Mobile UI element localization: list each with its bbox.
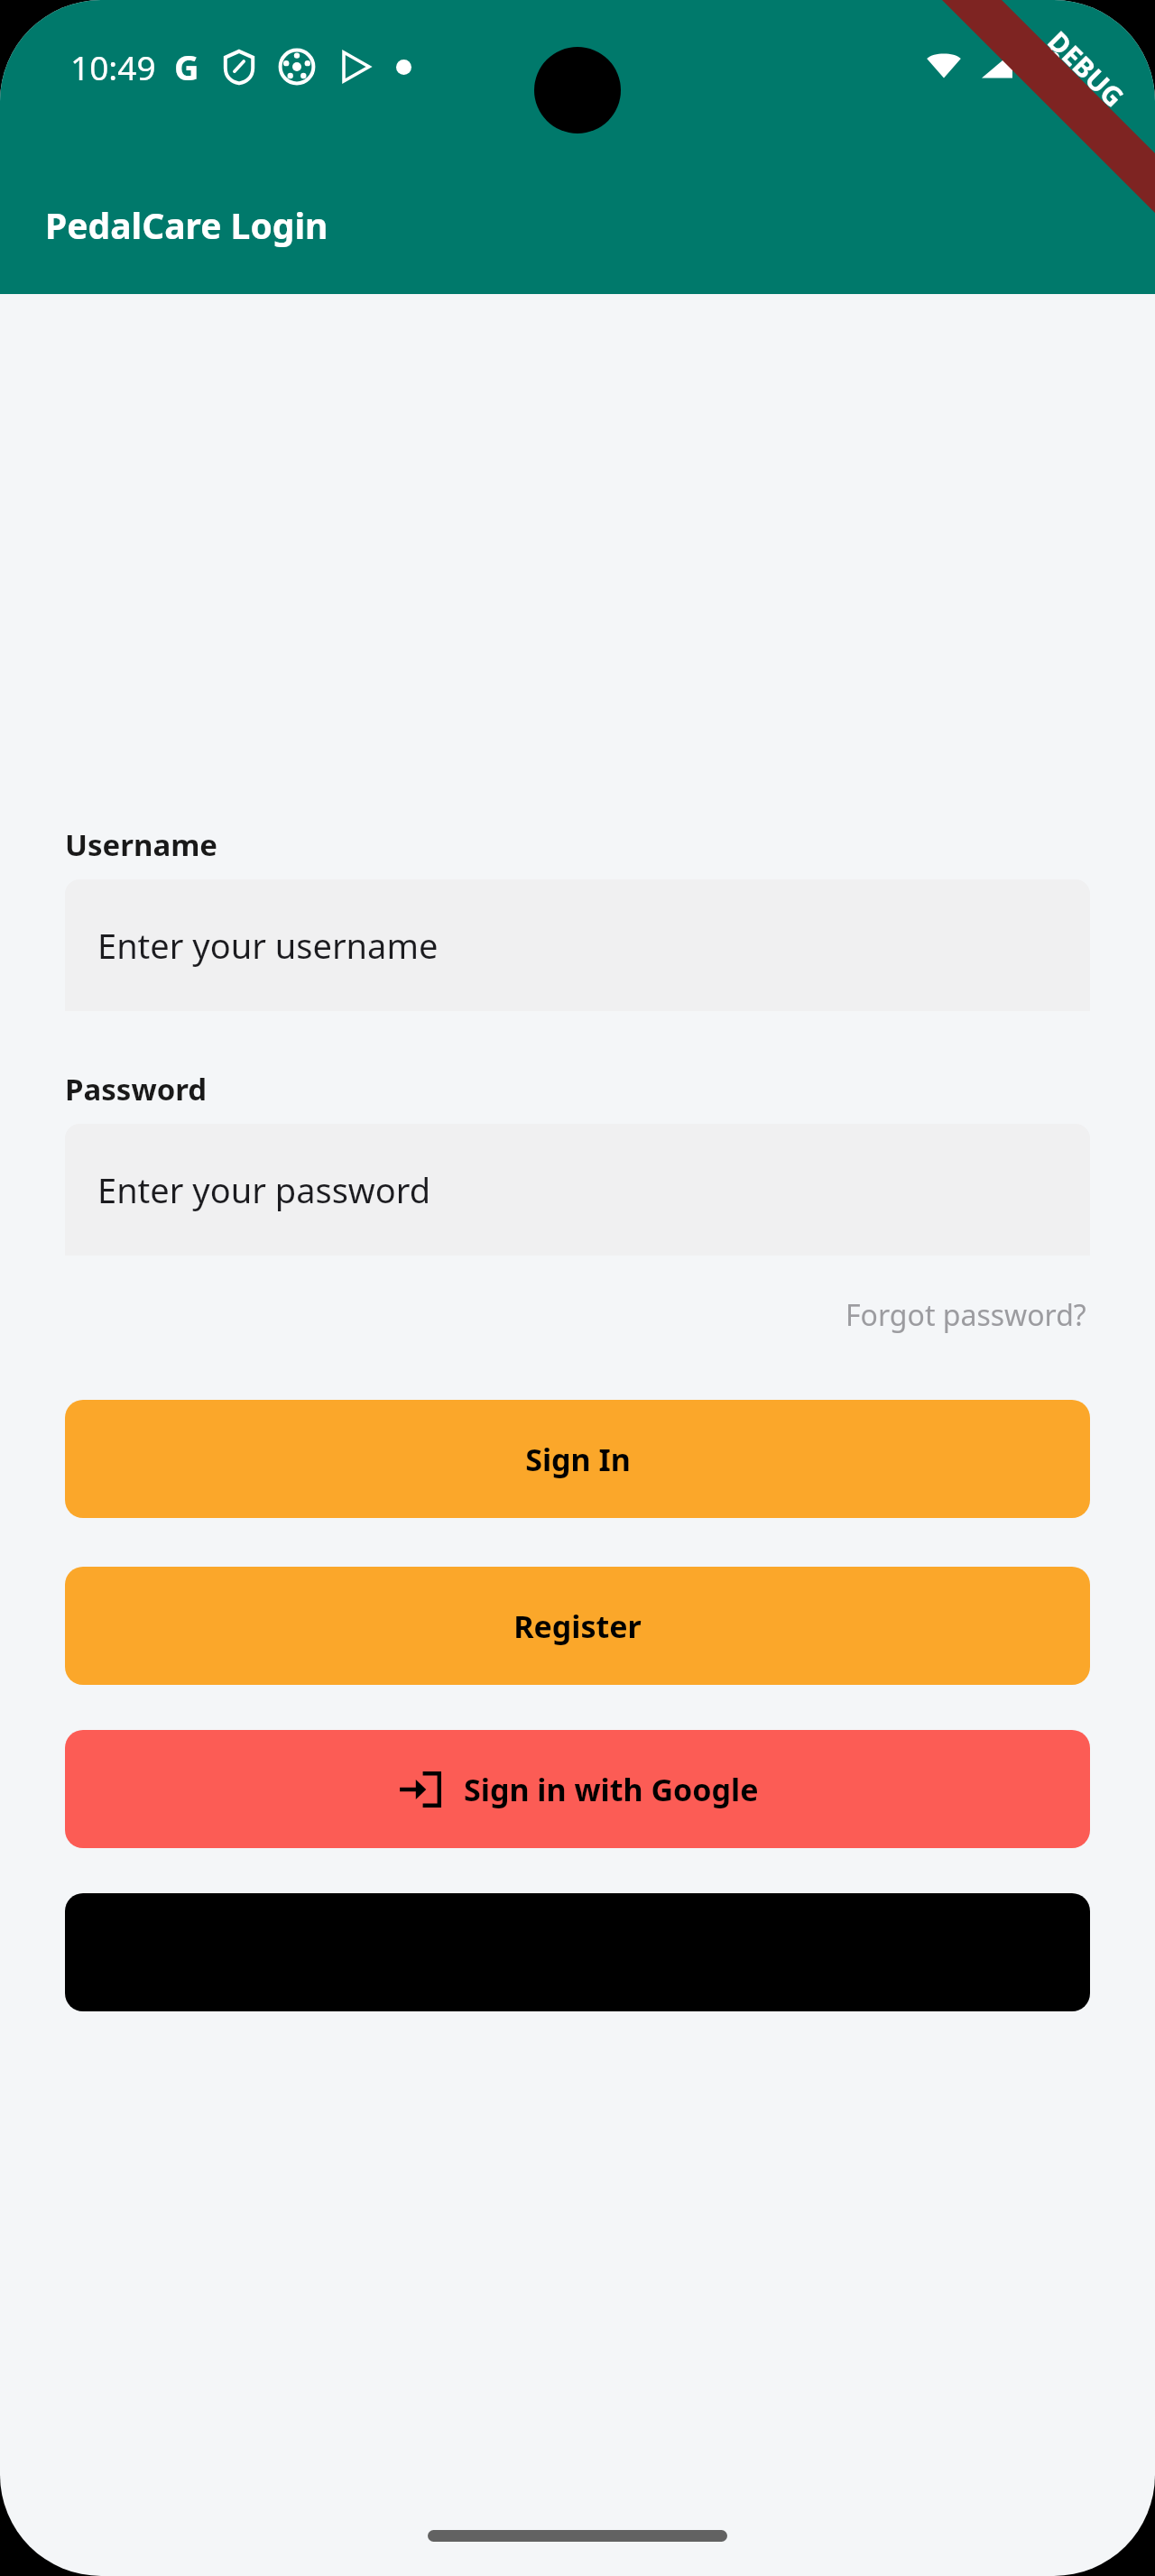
button[interactable]: Forgot password? — [842, 1292, 1090, 1339]
button[interactable]: Enter your username — [65, 879, 1090, 1011]
button[interactable]: Register — [65, 1567, 1090, 1685]
staticText: DEBUG — [1040, 23, 1133, 115]
staticText: Password — [65, 1069, 208, 1109]
button[interactable]: Sign In — [65, 1400, 1090, 1518]
button[interactable]: Enter your password — [65, 1124, 1090, 1256]
staticText: PedalCare Login — [45, 201, 328, 249]
button[interactable]: Sign in with Google — [65, 1730, 1090, 1848]
button[interactable]: Sign in with Apple — [65, 1893, 1090, 2011]
staticText: Enter your username — [97, 922, 439, 969]
staticText: G — [174, 43, 199, 90]
staticText: Enter your password — [97, 1166, 431, 1213]
staticText: Sign In — [525, 1439, 631, 1480]
staticText: Sign in with Google — [464, 1769, 759, 1810]
staticText: Username — [65, 824, 218, 865]
staticText: 10:49 — [70, 44, 156, 89]
staticText: Register — [513, 1605, 642, 1647]
staticText: Forgot password? — [845, 1295, 1086, 1335]
